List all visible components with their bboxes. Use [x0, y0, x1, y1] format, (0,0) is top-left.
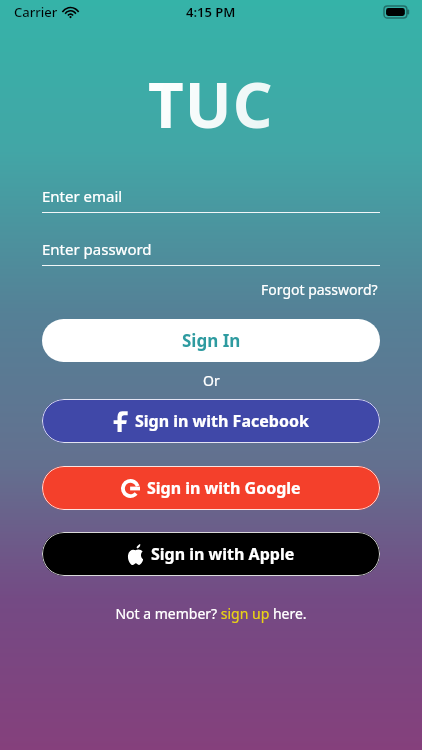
staticText: Sign in with Apple: [151, 543, 295, 565]
staticText: Sign In: [182, 329, 241, 352]
button[interactable]: Sign in with Facebook: [42, 399, 380, 443]
staticText: Carrier: [14, 3, 58, 21]
staticText: Sign in with Facebook: [135, 410, 309, 432]
button[interactable]: Not a member? sign up here.: [111, 600, 311, 627]
staticText: 4:15 PM: [186, 3, 236, 21]
button[interactable]: Forgot password?: [259, 278, 380, 301]
staticText: Sign in with Google: [147, 477, 301, 499]
staticText: Or: [203, 371, 220, 390]
button[interactable]: Enter email: [42, 186, 380, 213]
staticText: Enter email: [42, 186, 123, 206]
button[interactable]: Sign in with Apple: [42, 532, 380, 576]
button[interactable]: Sign In: [42, 319, 380, 362]
staticText: TUC: [148, 62, 274, 140]
button[interactable]: Enter password: [42, 239, 380, 266]
button[interactable]: Sign in with Google: [42, 466, 380, 510]
staticText: Enter password: [42, 239, 152, 259]
